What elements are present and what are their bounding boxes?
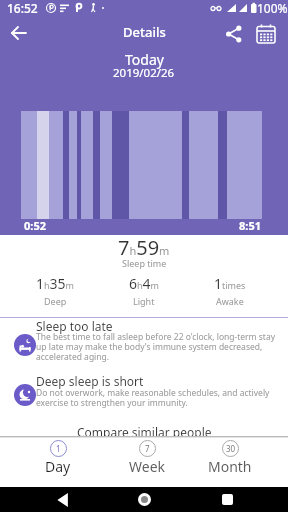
staticText: 1times bbox=[214, 274, 246, 293]
staticText: 16:52 bbox=[7, 0, 38, 16]
button[interactable]: 30 bbox=[195, 436, 265, 487]
staticText: 100% bbox=[257, 0, 288, 16]
button[interactable]: 7 bbox=[112, 436, 182, 487]
staticText: Awake bbox=[216, 295, 244, 307]
staticText: Month bbox=[208, 457, 252, 476]
button[interactable] bbox=[254, 22, 278, 46]
button[interactable] bbox=[223, 23, 245, 45]
staticText: The best time to fall asleep before 22 o… bbox=[36, 331, 288, 362]
staticText: Details bbox=[123, 23, 166, 41]
staticText: Deep sleep is short bbox=[36, 373, 144, 389]
staticText: Do not overwork, make reasonable schedul… bbox=[36, 387, 288, 408]
button[interactable] bbox=[6, 20, 32, 46]
staticText: 1h35m bbox=[36, 274, 75, 293]
staticText: 0:52 bbox=[24, 218, 46, 233]
staticText: 1 bbox=[56, 443, 61, 454]
staticText: Today bbox=[125, 50, 164, 69]
staticText: 6h4m bbox=[129, 274, 159, 293]
staticText: Sleep too late bbox=[36, 318, 113, 334]
staticText: Light bbox=[133, 295, 155, 307]
staticText: Deep bbox=[44, 295, 67, 307]
staticText: Sleep time bbox=[122, 257, 167, 269]
button[interactable] bbox=[50, 487, 75, 512]
staticText: 30 bbox=[226, 443, 236, 454]
staticText: 8:51 bbox=[239, 218, 261, 233]
staticText: 7h59m bbox=[118, 234, 170, 261]
button[interactable]: 1 bbox=[23, 436, 93, 487]
staticText: Week bbox=[129, 457, 166, 476]
staticText: 2019/02/26 bbox=[113, 65, 175, 81]
button[interactable] bbox=[215, 487, 240, 512]
staticText: Day bbox=[45, 457, 71, 476]
staticText: 7 bbox=[145, 443, 150, 454]
button[interactable] bbox=[132, 487, 157, 512]
button[interactable]: Compare similar people bbox=[77, 424, 212, 440]
